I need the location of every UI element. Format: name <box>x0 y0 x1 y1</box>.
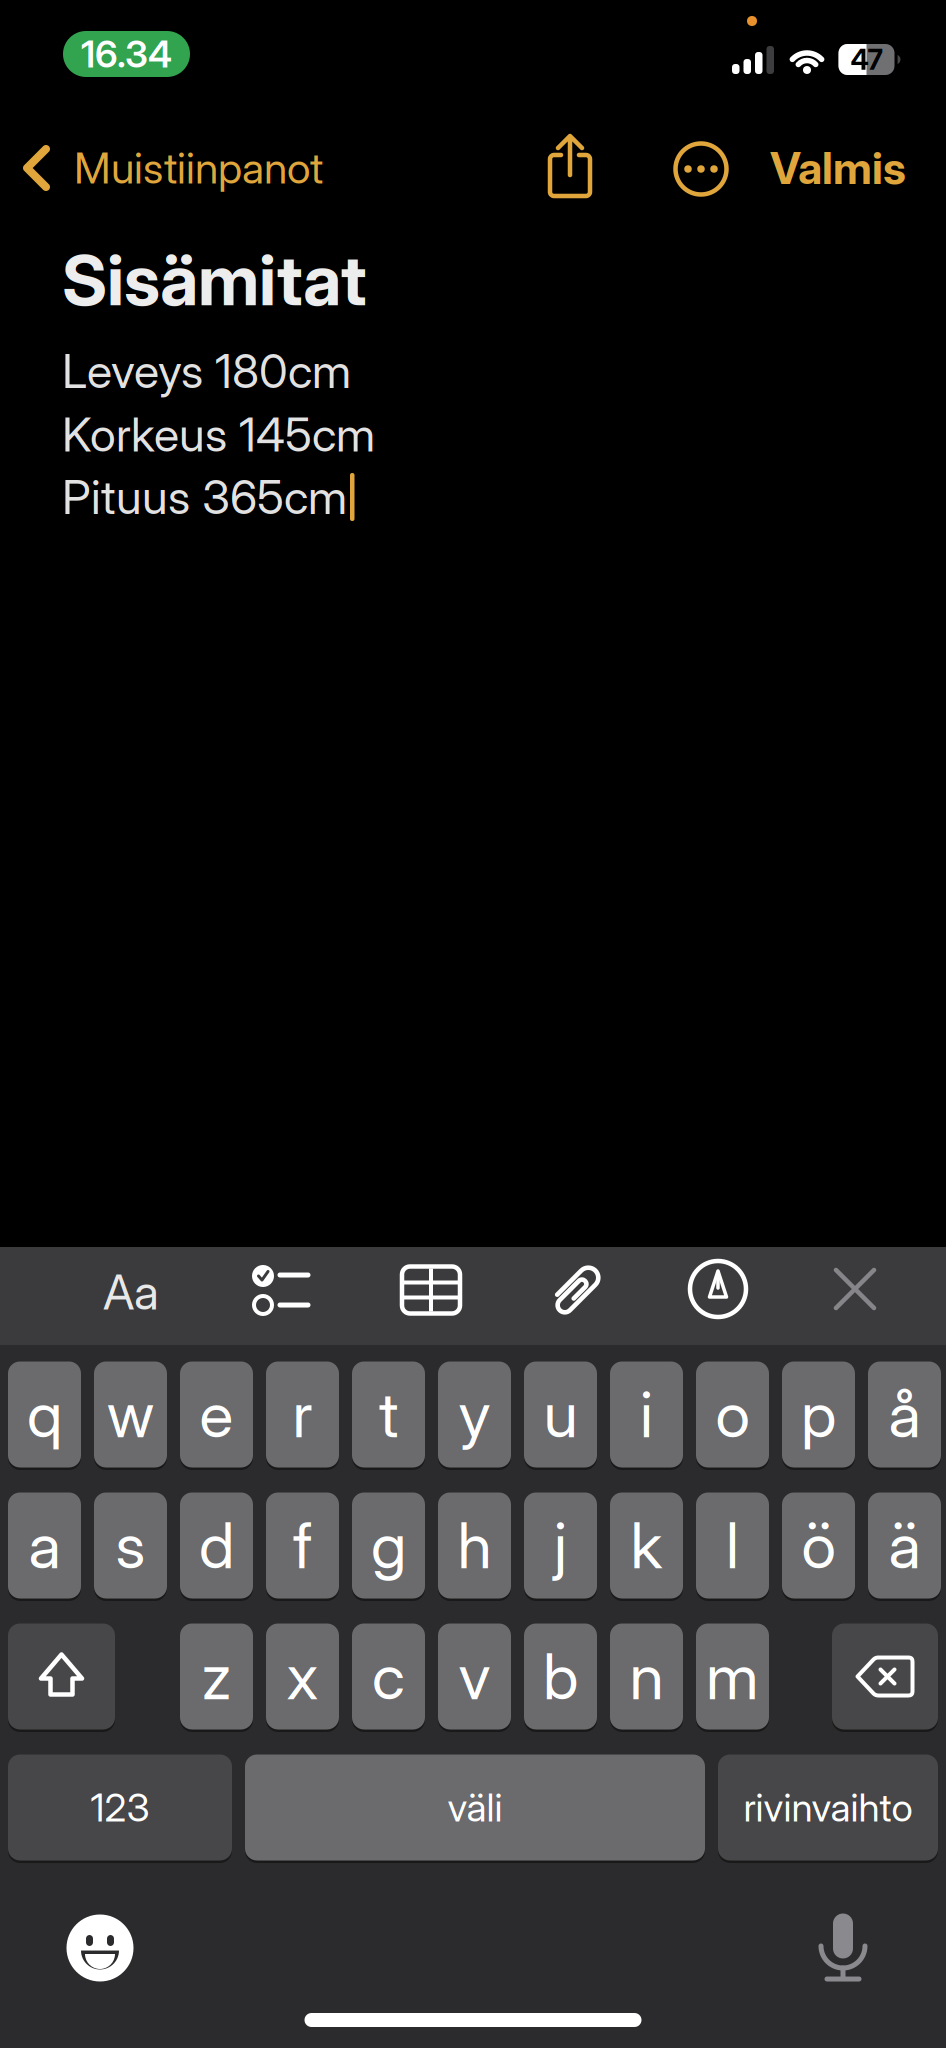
button[interactable]: Done <box>706 140 906 196</box>
button[interactable]: b <box>524 1622 597 1731</box>
button[interactable]: e <box>180 1360 253 1469</box>
button[interactable]: 123 <box>8 1753 232 1862</box>
staticText: b <box>543 1639 578 1713</box>
button[interactable]: h <box>438 1491 511 1600</box>
button[interactable]: å <box>868 1360 941 1469</box>
staticText: x <box>286 1639 318 1713</box>
button[interactable]: j <box>524 1491 597 1600</box>
button[interactable]: Close <box>810 1254 900 1324</box>
staticText: 123 <box>90 1785 149 1830</box>
staticText: h <box>457 1508 491 1582</box>
button[interactable]: t <box>352 1360 425 1469</box>
staticText: i <box>640 1377 653 1451</box>
button[interactable]: x <box>266 1622 339 1731</box>
staticText: e <box>199 1377 233 1451</box>
button[interactable]: n <box>610 1622 683 1731</box>
button[interactable]: Share <box>544 133 596 199</box>
staticText: o <box>715 1377 749 1451</box>
staticText: m <box>706 1639 759 1713</box>
button[interactable]: q <box>8 1360 81 1469</box>
staticText: l <box>726 1508 739 1582</box>
button[interactable]: väli <box>245 1753 705 1862</box>
staticText: t <box>379 1377 398 1451</box>
staticText: c <box>372 1639 405 1713</box>
staticText: d <box>199 1508 234 1582</box>
staticText: väli <box>447 1785 502 1830</box>
button[interactable]: p <box>782 1360 855 1469</box>
staticText: s <box>115 1508 145 1582</box>
staticText: Muistiinpanot <box>74 143 323 193</box>
staticText: v <box>458 1639 490 1713</box>
staticText: Leveys 180cm <box>62 343 351 399</box>
button[interactable]: l <box>696 1491 769 1600</box>
staticText: p <box>801 1377 836 1451</box>
button[interactable]: o <box>696 1360 769 1469</box>
button[interactable]: d <box>180 1491 253 1600</box>
button[interactable]: u <box>524 1360 597 1469</box>
button[interactable]: v <box>438 1622 511 1731</box>
staticText: å <box>888 1377 920 1451</box>
staticText: Valmis <box>770 142 906 194</box>
button[interactable]: Delete <box>832 1622 938 1731</box>
staticText: k <box>630 1508 662 1582</box>
button[interactable]: Attach <box>533 1254 623 1324</box>
staticText: Pituus 365cm <box>62 469 347 525</box>
button[interactable]: r <box>266 1360 339 1469</box>
staticText: Sisämitat <box>62 239 367 321</box>
staticText: z <box>201 1639 231 1713</box>
staticText: u <box>543 1377 577 1451</box>
staticText: w <box>107 1377 154 1451</box>
staticText: Aa <box>103 1264 159 1320</box>
button[interactable]: rivinvaihto <box>718 1753 938 1862</box>
button[interactable]: m <box>696 1622 769 1731</box>
staticText: rivinvaihto <box>743 1785 912 1830</box>
staticText: f <box>293 1508 312 1582</box>
button[interactable]: Time <box>63 31 190 77</box>
button[interactable]: More <box>675 143 727 195</box>
staticText: ä <box>888 1508 920 1582</box>
staticText: j <box>554 1508 567 1582</box>
button[interactable]: g <box>352 1491 425 1600</box>
button[interactable]: w <box>94 1360 167 1469</box>
staticText: a <box>28 1508 60 1582</box>
button[interactable]: Checklist <box>236 1256 326 1326</box>
staticText: g <box>371 1508 406 1582</box>
button[interactable]: y <box>438 1360 511 1469</box>
staticText: n <box>629 1639 663 1713</box>
button[interactable]: Back to Muistiinpanot <box>22 140 382 196</box>
button[interactable]: a <box>8 1491 81 1600</box>
staticText: ö <box>801 1508 835 1582</box>
button[interactable]: Dictate <box>819 1913 867 1983</box>
button[interactable]: s <box>94 1491 167 1600</box>
button[interactable]: Format <box>86 1257 176 1327</box>
staticText: y <box>458 1377 490 1451</box>
button[interactable]: f <box>266 1491 339 1600</box>
button[interactable]: k <box>610 1491 683 1600</box>
button[interactable]: ö <box>782 1491 855 1600</box>
staticText: 47 <box>850 43 882 76</box>
button[interactable]: i <box>610 1360 683 1469</box>
staticText: r <box>292 1377 312 1451</box>
button[interactable]: z <box>180 1622 253 1731</box>
button[interactable]: ä <box>868 1491 941 1600</box>
staticText: Korkeus 145cm <box>62 407 375 462</box>
button[interactable]: Emoji <box>66 1914 133 1981</box>
button[interactable]: c <box>352 1622 425 1731</box>
button[interactable]: Markup <box>673 1254 763 1324</box>
button[interactable]: Table <box>386 1255 476 1325</box>
staticText: q <box>27 1377 62 1451</box>
button[interactable]: Shift <box>8 1622 115 1731</box>
staticText: 16.34 <box>81 32 172 76</box>
